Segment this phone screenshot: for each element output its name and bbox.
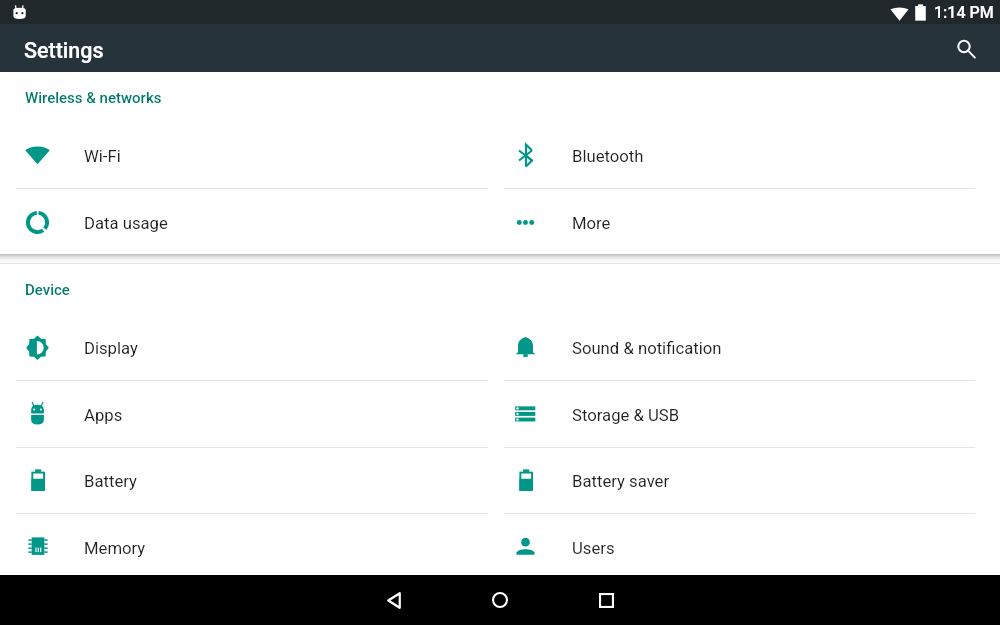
button[interactable]: Search [942, 24, 990, 72]
staticText: Apps [84, 406, 123, 426]
button[interactable]: Data usage [0, 189, 488, 255]
button[interactable]: Display [0, 314, 488, 380]
button[interactable]: Bluetooth [488, 122, 1000, 188]
button[interactable]: Memory [0, 514, 488, 580]
staticText: Wireless & networks [25, 89, 162, 107]
staticText: Users [572, 539, 615, 559]
staticText: More [572, 214, 611, 234]
button[interactable]: Apps [0, 381, 488, 447]
button[interactable]: Wi-Fi [0, 122, 488, 188]
button[interactable]: More [488, 189, 1000, 255]
staticText: Bluetooth [572, 147, 644, 167]
button[interactable]: Sound & notification [488, 314, 1000, 380]
button[interactable]: Users [488, 514, 1000, 580]
button[interactable]: Battery [0, 447, 488, 513]
button[interactable]: Back [364, 575, 424, 625]
staticText: 1:14 PM [934, 3, 994, 22]
button[interactable]: Recents [576, 575, 636, 625]
staticText: Sound & notification [572, 339, 722, 359]
staticText: Storage & USB [572, 406, 680, 426]
button[interactable]: Battery saver [488, 447, 1000, 513]
staticText: Display [84, 339, 138, 359]
staticText: Device [25, 281, 70, 299]
button[interactable]: Home [470, 575, 530, 625]
staticText: Wi-Fi [84, 147, 121, 167]
staticText: Memory [84, 539, 146, 559]
staticText: Data usage [84, 214, 168, 234]
staticText: Battery [84, 472, 137, 492]
button[interactable]: Storage & USB [488, 381, 1000, 447]
staticText: Battery saver [572, 472, 670, 492]
staticText: Settings [24, 38, 104, 63]
